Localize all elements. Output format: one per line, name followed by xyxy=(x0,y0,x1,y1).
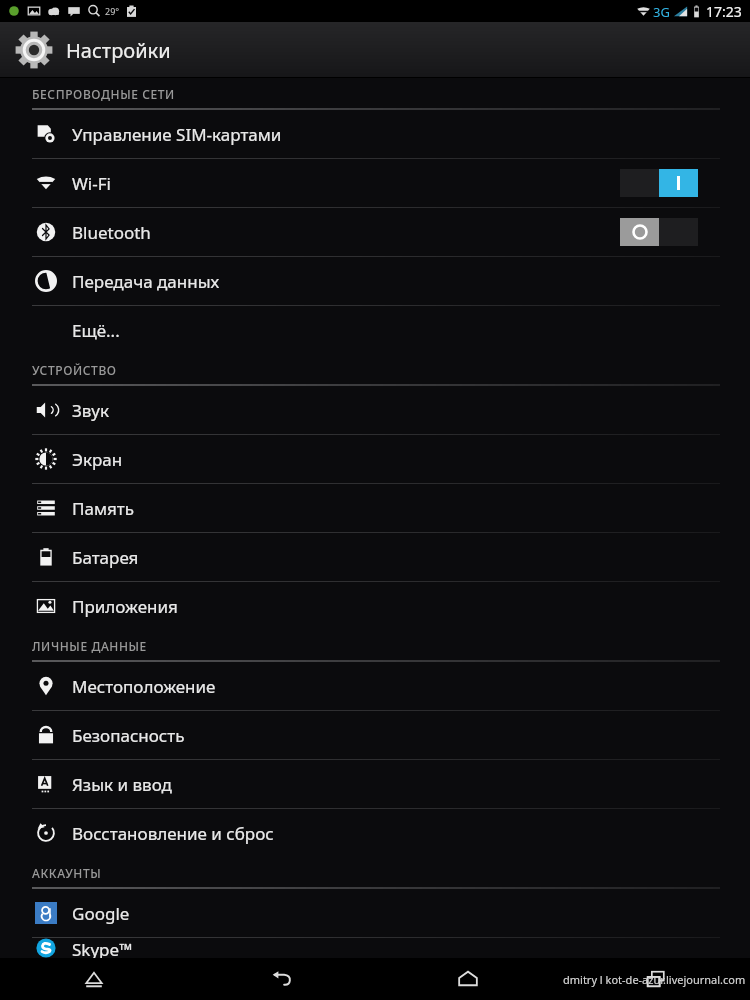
button[interactable]: Местоположение xyxy=(0,662,750,710)
button[interactable]: Батарея xyxy=(0,533,750,581)
button[interactable]: Wi-Fi xyxy=(0,159,750,207)
button[interactable]: Язык и ввод xyxy=(0,760,750,808)
button[interactable]: Настройки xyxy=(14,30,183,70)
staticText: АККАУНТЫ xyxy=(32,865,102,881)
staticText: Местоположение xyxy=(72,675,216,698)
staticText: Skype™ xyxy=(72,938,133,958)
staticText: Приложения xyxy=(72,595,178,618)
staticText: Настройки xyxy=(66,37,171,64)
button[interactable]: Управление SIM-картами xyxy=(0,110,750,158)
button[interactable]: Память xyxy=(0,484,750,532)
button[interactable]: Передача данных xyxy=(0,257,750,305)
button[interactable]: Восстановление и сброс xyxy=(0,809,750,857)
button[interactable]: Экран xyxy=(0,435,750,483)
button[interactable]: Звук xyxy=(0,386,750,434)
staticText: Wi-Fi xyxy=(72,172,111,195)
staticText: Язык и ввод xyxy=(72,773,172,796)
staticText: УСТРОЙСТВО xyxy=(32,362,117,378)
button[interactable]: Google xyxy=(0,889,750,937)
staticText: Память xyxy=(72,497,134,520)
button[interactable]: Skype™ xyxy=(0,938,750,958)
staticText: Bluetooth xyxy=(72,221,151,244)
staticText: Передача данных xyxy=(72,270,220,293)
button[interactable]: Recents xyxy=(562,958,750,1000)
staticText: dmitry l kot-de-azur.livejournal.com xyxy=(563,972,746,987)
button[interactable]: Home xyxy=(374,958,562,1000)
staticText: Звук xyxy=(72,399,109,422)
staticText: 3G xyxy=(653,3,670,21)
staticText: ЛИЧНЫЕ ДАННЫЕ xyxy=(32,638,147,654)
button[interactable]: On xyxy=(620,169,698,197)
staticText: Экран xyxy=(72,448,123,471)
staticText: Ещё... xyxy=(72,319,120,342)
staticText: Безопасность xyxy=(72,724,185,747)
staticText: БЕСПРОВОДНЫЕ СЕТИ xyxy=(32,86,175,102)
staticText: 17:23 xyxy=(706,2,742,21)
button[interactable]: Off xyxy=(620,218,698,246)
staticText: Google xyxy=(72,902,130,925)
staticText: Управление SIM-картами xyxy=(72,123,282,146)
button[interactable]: Up xyxy=(0,958,187,1000)
button[interactable]: Ещё... xyxy=(0,306,750,354)
button[interactable]: Безопасность xyxy=(0,711,750,759)
staticText: Батарея xyxy=(72,546,139,569)
staticText: Восстановление и сброс xyxy=(72,822,274,845)
button[interactable]: Bluetooth xyxy=(0,208,750,256)
button[interactable]: Back xyxy=(187,958,374,1000)
staticText: 29° xyxy=(105,5,120,17)
button[interactable]: Приложения xyxy=(0,582,750,630)
